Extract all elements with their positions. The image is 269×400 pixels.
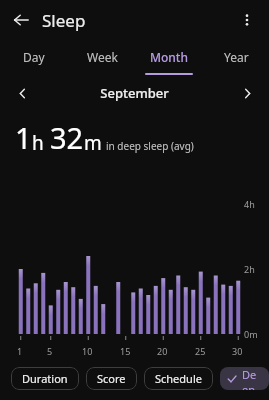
staticText: 2h: [244, 263, 255, 275]
button[interactable]: Next month: [235, 81, 259, 105]
button[interactable]: Duration: [11, 367, 79, 390]
staticText: Schedule: [155, 371, 202, 386]
button[interactable]: Score: [86, 367, 137, 390]
staticText: 1: [17, 345, 23, 357]
staticText: in deep sleep (avg): [106, 139, 194, 153]
staticText: 0m: [244, 328, 258, 340]
button[interactable]: Previous month: [10, 81, 34, 105]
staticText: 15: [120, 345, 131, 357]
button[interactable]: Year: [202, 40, 269, 78]
staticText: Score: [97, 371, 126, 386]
button[interactable]: Month: [135, 40, 202, 78]
staticText: 10: [82, 345, 93, 357]
staticText: 4h: [244, 198, 255, 210]
staticText: 1: [15, 118, 32, 157]
staticText: m: [84, 130, 102, 156]
button[interactable]: Schedule: [144, 367, 213, 390]
staticText: 32: [50, 118, 84, 157]
staticText: 30: [232, 345, 243, 357]
button[interactable]: Day: [0, 40, 68, 78]
staticText: 5: [47, 345, 53, 357]
staticText: h: [32, 130, 44, 156]
staticText: Sleep: [42, 9, 86, 32]
staticText: Week: [87, 49, 118, 65]
staticText: Duration: [22, 371, 68, 386]
staticText: Year: [224, 49, 249, 65]
staticText: Deep: [242, 367, 262, 390]
button[interactable]: Back: [8, 7, 34, 33]
staticText: Day: [23, 49, 45, 65]
staticText: Month: [150, 49, 188, 65]
button[interactable]: Week: [68, 40, 135, 78]
staticText: 20: [157, 345, 168, 357]
staticText: 25: [195, 345, 206, 357]
staticText: September: [100, 84, 169, 102]
button[interactable]: Deep: [220, 367, 269, 390]
button[interactable]: More options: [234, 7, 260, 33]
